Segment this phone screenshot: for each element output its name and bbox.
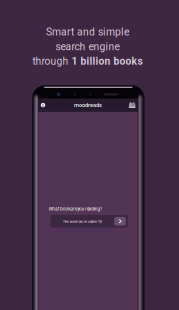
staticText: Smart and simple (46, 26, 129, 38)
staticText: through 1 billion books (32, 55, 142, 67)
staticText: search engine (55, 41, 119, 53)
button[interactable]: Profile (38, 98, 48, 112)
staticText: The woman in cabin 10 (63, 219, 102, 224)
staticText: What book are you reading? (49, 206, 102, 212)
button[interactable]: Search (114, 217, 126, 226)
button[interactable]: Library (127, 98, 138, 112)
staticText: moodreads (74, 102, 102, 108)
